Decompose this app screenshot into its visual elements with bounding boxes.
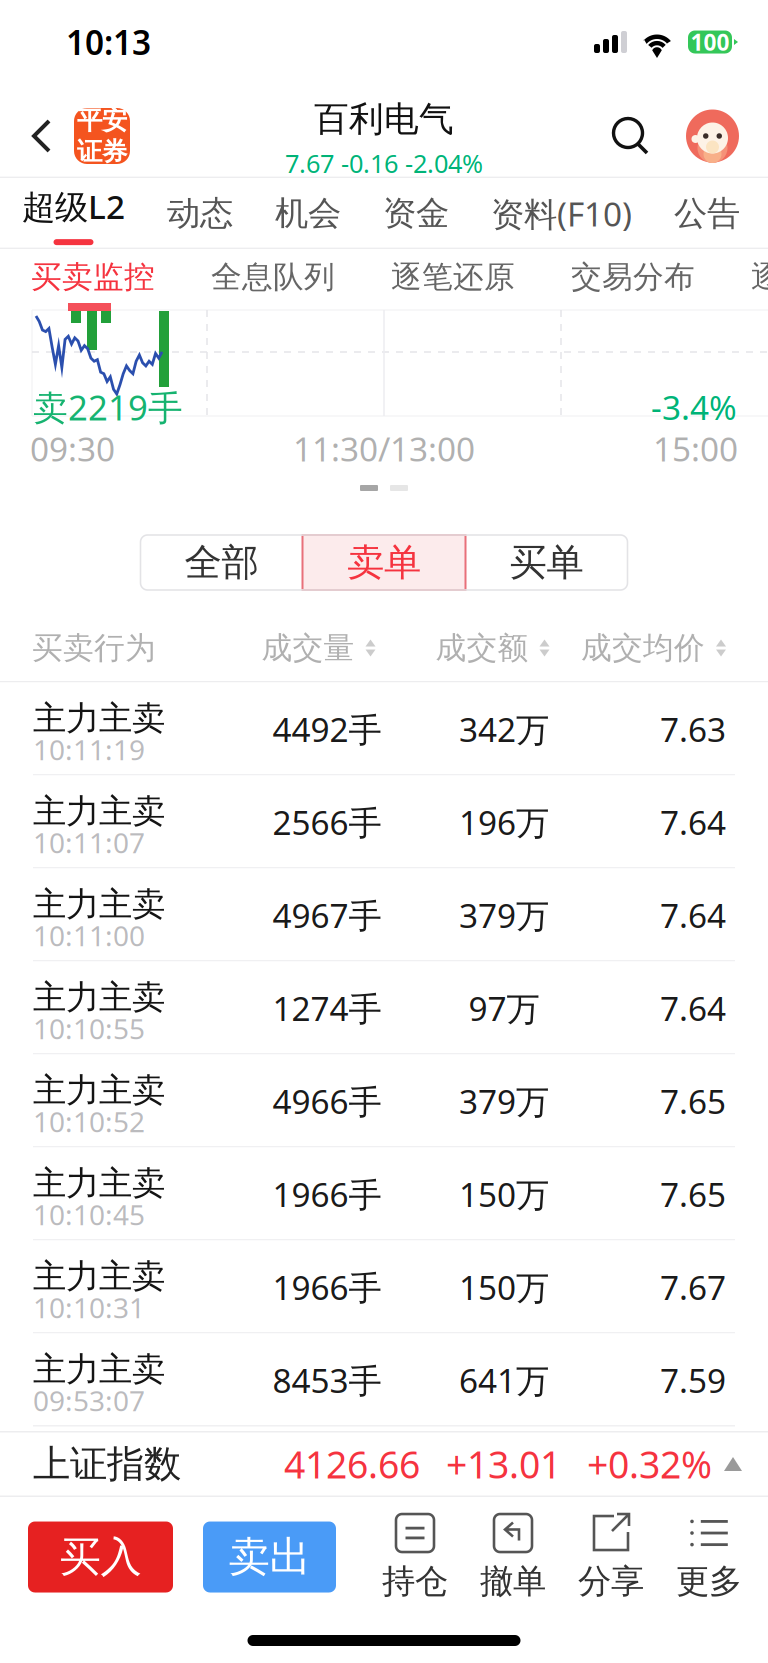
staticText: 主力主卖 (33, 884, 165, 925)
staticText: 11:30/13:00 (293, 426, 475, 471)
staticText: 7.67 (660, 1265, 726, 1309)
staticText: 7.63 (660, 707, 726, 751)
staticText: 成交量 (261, 629, 354, 667)
button[interactable]: 更多 (660, 1511, 758, 1603)
staticText: 买入 (59, 1532, 141, 1582)
staticText: 上证指数 (33, 1441, 181, 1487)
button[interactable]: 主力主卖 (0, 1333, 768, 1426)
staticText: 逐 (751, 258, 768, 296)
staticText: -3.4% (651, 385, 737, 429)
button[interactable]: 全息队列 (211, 251, 335, 303)
staticText: 379万 (459, 893, 549, 937)
staticText: 资料(F10) (491, 191, 632, 236)
button[interactable]: 撤单 (464, 1511, 562, 1603)
staticText: 逐笔还原 (391, 258, 515, 296)
button[interactable]: 卖出 (203, 1521, 336, 1592)
staticText: 196万 (459, 800, 549, 844)
button[interactable]: 公告 (674, 182, 740, 244)
staticText: 全息队列 (211, 258, 335, 296)
staticText: 机会 (275, 193, 341, 234)
staticText: 主力主卖 (33, 698, 165, 739)
button[interactable]: 成交均价 (574, 623, 734, 673)
staticText: 资金 (383, 193, 449, 234)
button[interactable]: 全部 (140, 535, 302, 590)
staticText: 更多 (676, 1561, 742, 1602)
staticText: 7.67 -0.16 -2.04% (285, 146, 483, 180)
staticText: 09:30 (30, 426, 115, 471)
staticText: 379万 (459, 1079, 549, 1123)
staticText: 卖单 (347, 540, 421, 585)
staticText: 10:11:19 (33, 731, 145, 768)
staticText: 4967手 (272, 893, 381, 937)
staticText: 动态 (167, 193, 233, 234)
staticText: 4126.66 (284, 1439, 420, 1489)
staticText: 10:11:07 (33, 824, 145, 861)
staticText: 买单 (509, 540, 583, 585)
button[interactable]: 持仓 (366, 1511, 464, 1603)
staticText: 主力主卖 (33, 1163, 165, 1204)
staticText: 10:13 (66, 20, 151, 64)
staticText: 成交额 (435, 629, 528, 667)
button[interactable]: Account (686, 109, 739, 162)
button[interactable]: 逐 (751, 251, 768, 303)
button[interactable]: 成交额 (428, 623, 558, 673)
button[interactable]: 主力主卖 (0, 775, 768, 868)
staticText: 主力主卖 (33, 1349, 165, 1390)
button[interactable]: Search (606, 106, 654, 166)
staticText: +13.01 (446, 1439, 561, 1489)
button[interactable]: 主力主卖 (0, 868, 768, 961)
button[interactable]: Back (20, 109, 64, 163)
staticText: 4492手 (272, 707, 381, 751)
staticText: 100 (690, 27, 729, 57)
button[interactable]: 主力主卖 (0, 1240, 768, 1333)
staticText: 超级L2 (22, 184, 125, 228)
staticText: 卖出 (228, 1532, 310, 1582)
staticText: 主力主卖 (33, 1256, 165, 1297)
staticText: 1966手 (272, 1172, 381, 1216)
staticText: 持仓 (382, 1561, 448, 1602)
staticText: 主力主卖 (33, 977, 165, 1018)
button[interactable]: 主力主卖 (0, 1147, 768, 1240)
staticText: 全部 (184, 540, 258, 585)
staticText: 7.64 (660, 986, 726, 1030)
staticText: 09:53:07 (33, 1382, 145, 1419)
button[interactable]: 成交量 (254, 623, 384, 673)
staticText: 7.65 (660, 1172, 726, 1216)
button[interactable]: 平安证券 (74, 108, 130, 164)
staticText: 1274手 (272, 986, 381, 1030)
button[interactable]: 买卖监控 (31, 251, 155, 303)
button[interactable]: 主力主卖 (0, 961, 768, 1054)
staticText: 150万 (459, 1172, 549, 1216)
staticText: 2566手 (272, 800, 381, 844)
button[interactable]: 资料(F10) (491, 182, 632, 244)
button[interactable]: 分享 (562, 1511, 660, 1603)
staticText: 10:10:55 (33, 1010, 145, 1047)
button[interactable]: 逐笔还原 (391, 251, 515, 303)
staticText: +0.32% (587, 1439, 712, 1489)
button[interactable]: 超级L2 (22, 172, 125, 255)
staticText: 买卖行为 (32, 629, 156, 667)
staticText: 交易分布 (571, 258, 695, 296)
staticText: 卖2219手 (33, 384, 183, 430)
staticText: 1966手 (272, 1265, 381, 1309)
staticText: 主力主卖 (33, 1070, 165, 1111)
button[interactable]: 交易分布 (571, 251, 695, 303)
button[interactable]: 主力主卖 (0, 1054, 768, 1147)
staticText: 10:10:52 (33, 1103, 145, 1140)
button[interactable]: 主力主卖 (0, 682, 768, 775)
staticText: 4966手 (272, 1079, 381, 1123)
staticText: 公告 (674, 193, 740, 234)
button[interactable]: 买入 (28, 1521, 173, 1592)
staticText: 10:10:31 (33, 1289, 145, 1326)
button[interactable]: 卖单 (302, 535, 465, 590)
button[interactable]: 机会 (275, 182, 341, 244)
staticText: 10:11:00 (33, 917, 145, 954)
staticText: 150万 (459, 1265, 549, 1309)
staticText: 成交均价 (581, 629, 705, 667)
staticText: 7.65 (660, 1079, 726, 1123)
button[interactable]: 动态 (167, 182, 233, 244)
button[interactable]: 买单 (465, 535, 627, 590)
staticText: 百利电气 (314, 98, 454, 140)
button[interactable]: 资金 (383, 182, 449, 244)
staticText: 主力主卖 (33, 791, 165, 832)
